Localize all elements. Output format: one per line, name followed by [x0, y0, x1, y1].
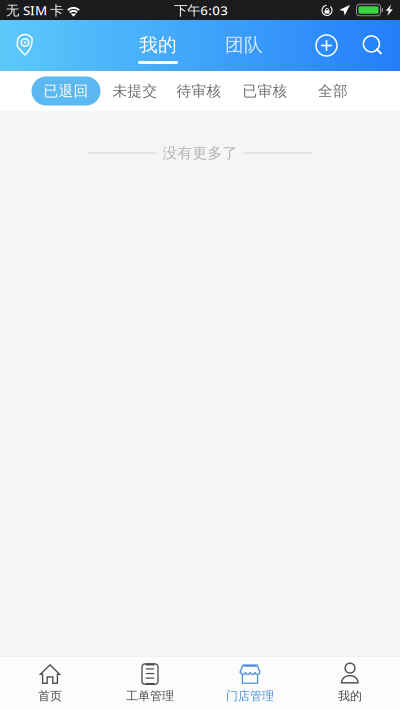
button[interactable]: 全部	[312, 71, 354, 111]
staticText: 没有更多了	[162, 144, 237, 162]
button[interactable]: 首页	[0, 657, 100, 710]
staticText: 首页	[38, 689, 62, 703]
button[interactable]: Search	[349, 20, 397, 71]
button[interactable]: 工单管理	[100, 657, 200, 710]
staticText: 已退回	[43, 82, 88, 100]
button[interactable]: 团队	[214, 20, 274, 71]
button[interactable]: 已审核	[237, 71, 293, 111]
staticText: 我的	[139, 33, 177, 56]
staticText: 无 SIM 卡	[6, 1, 63, 19]
button[interactable]: 门店管理	[200, 657, 300, 710]
button[interactable]: 未提交	[107, 71, 163, 111]
staticText: 下午6:03	[174, 1, 228, 19]
button[interactable]: 已退回	[32, 71, 100, 111]
button[interactable]: 我的	[300, 657, 400, 710]
staticText: 工单管理	[126, 689, 174, 703]
button[interactable]: Location	[0, 20, 50, 71]
staticText: 待审核	[176, 82, 221, 100]
button[interactable]: Add	[304, 20, 349, 71]
button[interactable]: 我的	[128, 20, 188, 71]
staticText: 未提交	[112, 82, 157, 100]
button[interactable]: 待审核	[171, 71, 227, 111]
staticText: 门店管理	[226, 689, 274, 703]
staticText: 团队	[225, 33, 263, 56]
staticText: 已审核	[242, 82, 287, 100]
staticText: 我的	[338, 689, 362, 703]
staticText: 全部	[318, 82, 348, 100]
